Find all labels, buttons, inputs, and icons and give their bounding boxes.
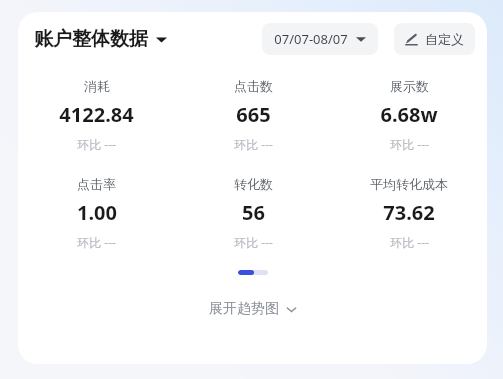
button[interactable]: 07/07-08/07	[262, 23, 378, 55]
staticText: 展示数	[390, 78, 429, 94]
staticText: 环比 ---	[390, 234, 429, 250]
other: Customize	[405, 33, 418, 46]
button[interactable]: 消耗	[18, 78, 175, 152]
staticText: 转化数	[234, 176, 273, 192]
button[interactable]: 展示数	[331, 78, 487, 152]
staticText: 665	[236, 101, 271, 128]
staticText: 6.68w	[380, 101, 438, 128]
staticText: 环比 ---	[234, 234, 273, 250]
staticText: 环比 ---	[77, 136, 116, 152]
button[interactable]: 账户整体数据	[32, 23, 169, 55]
staticText: 环比 ---	[77, 234, 116, 250]
button[interactable]: 展开趋势图	[199, 295, 307, 323]
staticText: 账户整体数据	[34, 27, 148, 51]
staticText: 4122.84	[59, 101, 134, 128]
staticText: 07/07-08/07	[274, 30, 348, 48]
staticText: 环比 ---	[234, 136, 273, 152]
button[interactable]: 平均转化成本	[331, 176, 487, 250]
button[interactable]: 转化数	[175, 176, 331, 250]
staticText: 73.62	[383, 199, 435, 226]
staticText: 环比 ---	[390, 136, 429, 152]
staticText: 点击数	[234, 78, 273, 94]
button[interactable]: 点击数	[175, 78, 331, 152]
button[interactable]: Customize	[394, 23, 475, 55]
staticText: 56	[242, 199, 265, 226]
button[interactable]: 点击率	[18, 176, 175, 250]
staticText: 点击率	[77, 176, 116, 192]
staticText: 1.00	[77, 199, 117, 226]
staticText: 展开趋势图	[209, 300, 279, 318]
staticText: 消耗	[84, 78, 110, 94]
staticText: 自定义	[425, 31, 464, 47]
staticText: 平均转化成本	[370, 176, 448, 192]
